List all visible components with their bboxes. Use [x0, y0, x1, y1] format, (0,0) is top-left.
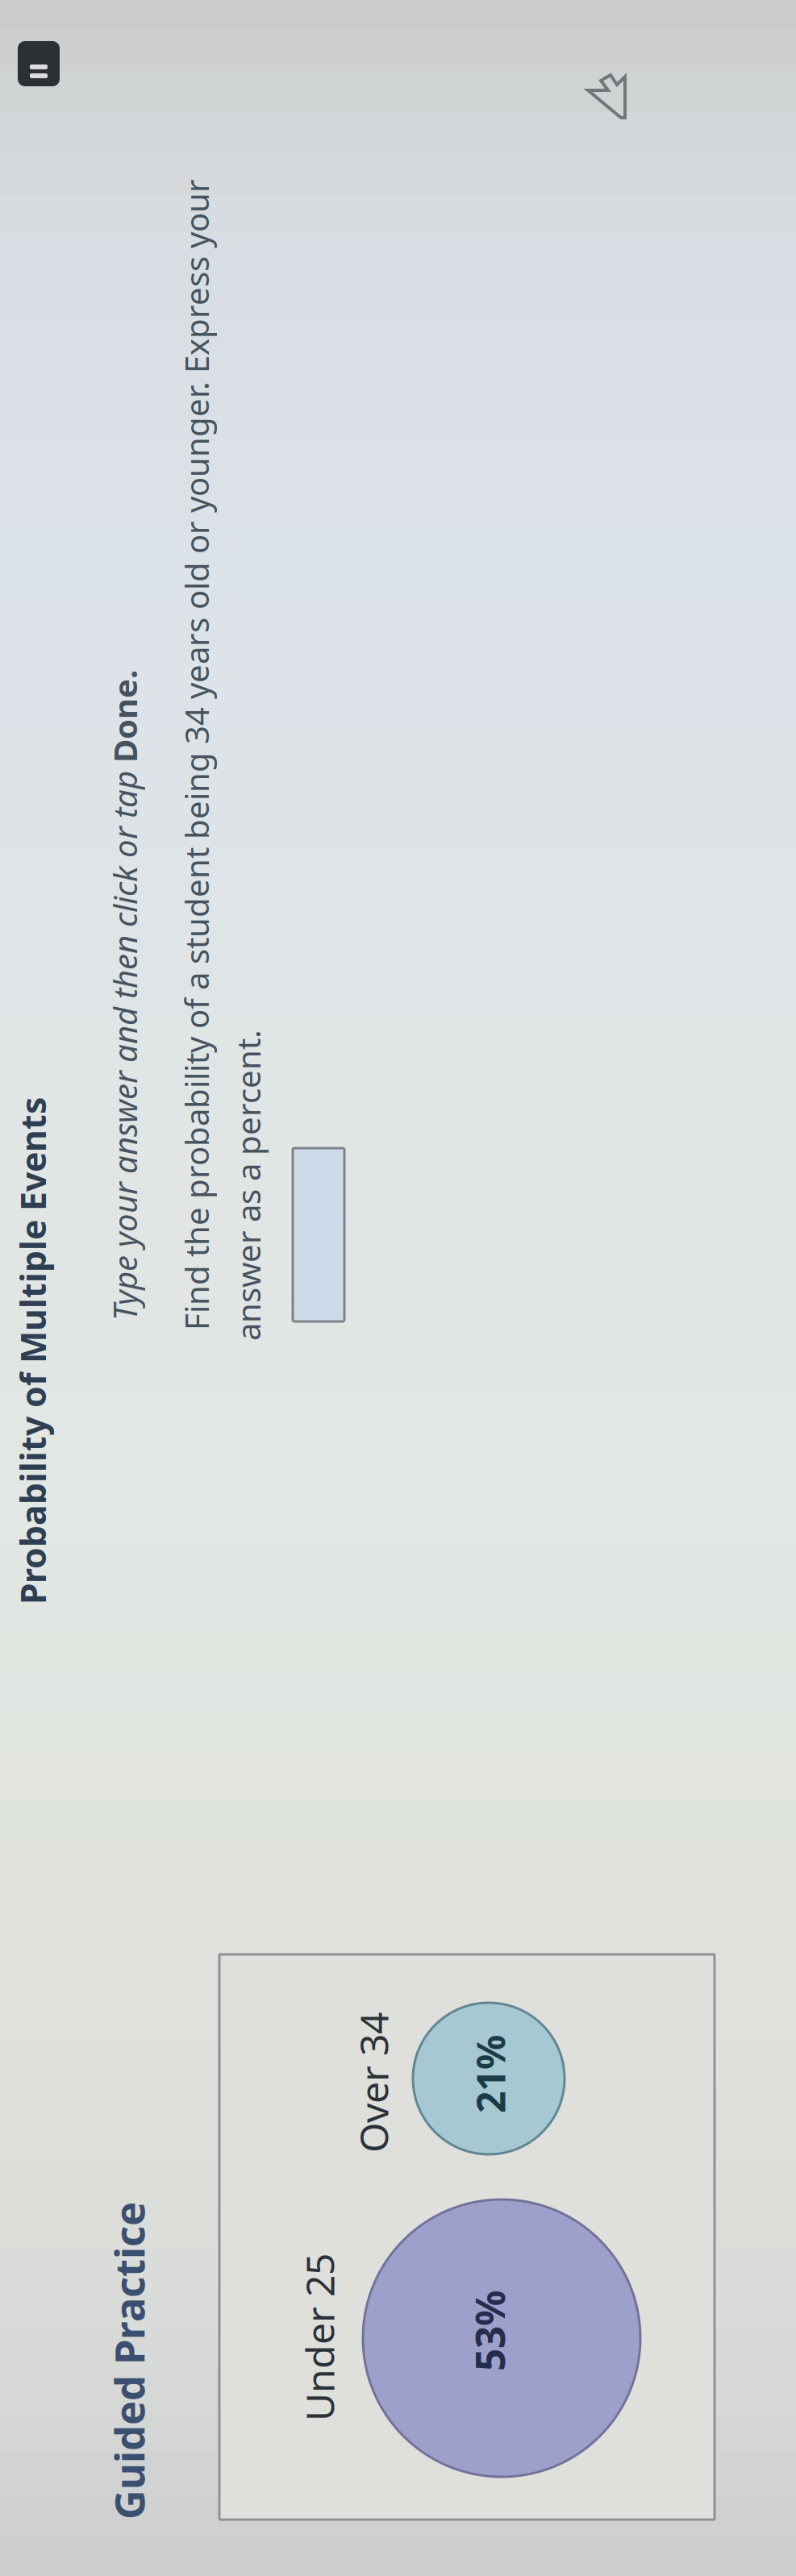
staticText: Probability of Multiple Events — [81, 900, 589, 946]
